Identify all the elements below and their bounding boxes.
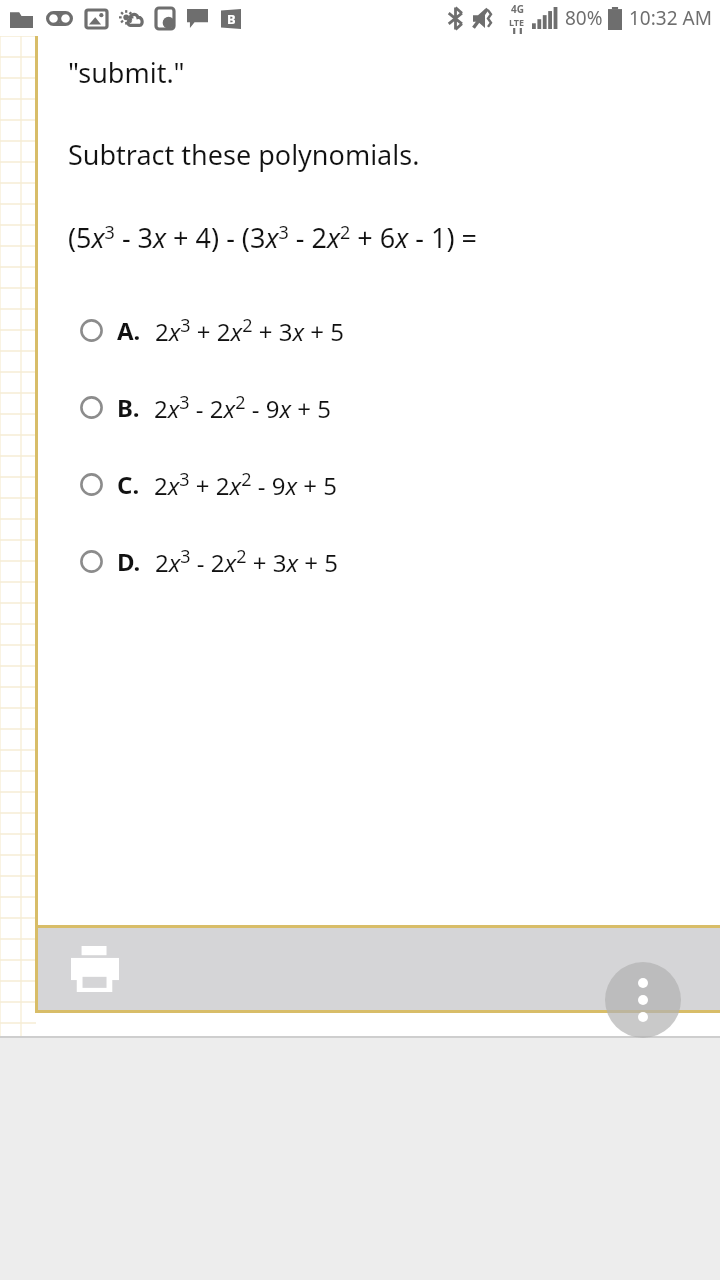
button[interactable]: Print (63, 937, 127, 1001)
staticText: 10:32 AM (629, 5, 712, 31)
staticText: D. (117, 545, 141, 578)
staticText: A. (117, 314, 141, 347)
staticText: 2x3 - 2x2 - 9x + 5 (154, 390, 331, 425)
staticText: Subtract these polynomials. (68, 136, 420, 173)
staticText: (5x3 - 3x + 4) - (3x3 - 2x2 + 6x - 1) = (68, 219, 477, 256)
staticText: 2x3 - 2x2 + 3x + 5 (155, 544, 338, 579)
button[interactable]: B. (38, 369, 720, 446)
button[interactable]: A. (38, 292, 720, 369)
staticText: "submit." (68, 54, 185, 91)
staticText: 4G (511, 2, 524, 16)
staticText: LTE (509, 16, 525, 28)
button[interactable]: C. (38, 446, 720, 523)
staticText: C. (117, 468, 140, 501)
staticText: 2x3 + 2x2 + 3x + 5 (155, 313, 344, 348)
staticText: B. (117, 391, 140, 424)
staticText: 2x3 + 2x2 - 9x + 5 (154, 467, 337, 502)
staticText: B (227, 10, 236, 28)
button[interactable]: More options (605, 962, 681, 1038)
button[interactable]: D. (38, 523, 720, 600)
staticText: 80% (565, 5, 603, 31)
